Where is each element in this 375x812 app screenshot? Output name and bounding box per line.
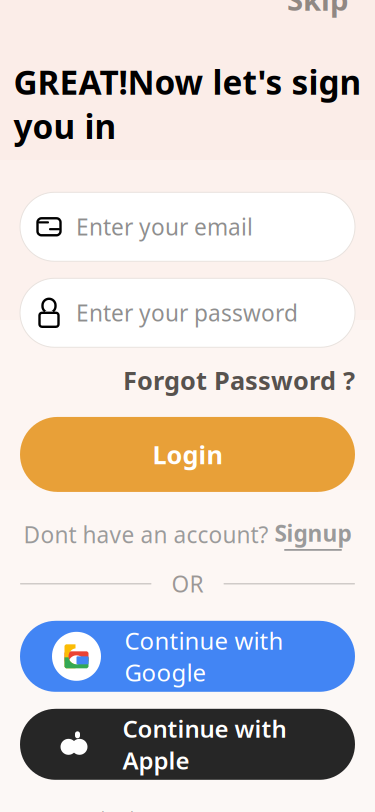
button[interactable]: Skip [279, 0, 357, 24]
staticText: GREAT!Now let's sign you in [13, 60, 361, 148]
staticText: Skip [287, 0, 349, 19]
button[interactable]: Dont have an account? [23, 518, 351, 551]
staticText: Dont have an account? [23, 519, 274, 549]
staticText: Login [152, 438, 222, 471]
button[interactable]: Forgot Password ? [123, 363, 355, 397]
staticText: Forgot Password ? [123, 363, 355, 397]
button[interactable]: Continue with Apple [20, 709, 355, 780]
button[interactable]: Enter your email [20, 192, 355, 261]
staticText: Enter your password [76, 298, 298, 328]
button[interactable]: Login [20, 417, 355, 492]
staticText: Signup [274, 518, 351, 548]
staticText: Continue with Apple [122, 712, 286, 776]
staticText: OR [171, 569, 203, 599]
staticText: Enter your email [76, 212, 253, 242]
staticText: Continue with Google [124, 624, 283, 688]
button[interactable]: Enter your password [20, 278, 355, 347]
button[interactable]: Continue with Google [20, 621, 355, 692]
